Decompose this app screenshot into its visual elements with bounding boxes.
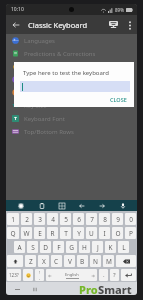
button[interactable]: N	[90, 255, 101, 267]
button[interactable]: Top/Bottom Rows	[6, 125, 137, 138]
staticText: Classic Keyboard	[28, 20, 104, 30]
button[interactable]: U	[86, 227, 97, 239]
button[interactable]: CLOSE	[103, 93, 134, 106]
button[interactable]: 6	[73, 213, 84, 225]
button[interactable]: O	[112, 227, 123, 239]
button[interactable]: 4	[47, 213, 58, 225]
button[interactable]: F	[53, 241, 64, 253]
staticText: T	[64, 229, 68, 238]
staticText: A	[17, 243, 22, 252]
staticText: C	[54, 257, 59, 266]
staticText: Sound & Vibration	[24, 89, 76, 97]
button[interactable]: Backspace	[116, 255, 136, 267]
button[interactable]: G	[66, 241, 77, 253]
staticText: 89%	[115, 7, 124, 13]
button[interactable]: 3	[34, 213, 45, 225]
button[interactable]: right	[96, 200, 107, 211]
staticText: 6	[77, 215, 81, 224]
staticText: Z	[29, 257, 33, 266]
button[interactable]: L	[118, 241, 129, 253]
button[interactable]: A	[14, 241, 25, 253]
staticText: 1	[11, 215, 15, 224]
button[interactable]: 9	[112, 213, 123, 225]
staticText: 0	[129, 215, 133, 224]
button[interactable]: left	[76, 200, 87, 211]
button[interactable]: Languages	[6, 34, 137, 47]
button[interactable]: 0	[125, 213, 136, 225]
staticText: S	[31, 243, 35, 252]
staticText: Key Size	[24, 102, 47, 110]
staticText: Top/Bottom Rows	[24, 128, 74, 136]
button[interactable]: More options	[123, 18, 137, 32]
button[interactable]: Space, English	[46, 269, 97, 281]
staticText: E	[38, 229, 42, 238]
staticText: Smart	[98, 282, 132, 295]
button[interactable]: Enter	[121, 269, 136, 281]
button[interactable]: Shift	[7, 255, 23, 267]
button[interactable]: K	[105, 241, 116, 253]
staticText: CLOSE	[110, 96, 127, 103]
button[interactable]: D	[40, 241, 51, 253]
button[interactable]: !	[35, 269, 44, 281]
button[interactable]: Emoji	[23, 269, 33, 281]
button[interactable]: Recent apps	[32, 286, 38, 292]
button[interactable]: 8	[99, 213, 110, 225]
staticText: ,	[39, 275, 41, 280]
staticText: Theme	[24, 76, 44, 84]
button[interactable]: Keyboard Font	[6, 112, 137, 125]
staticText: G	[69, 243, 74, 252]
staticText: V	[68, 257, 72, 266]
button[interactable]: P	[125, 227, 136, 239]
button[interactable]: I	[99, 227, 110, 239]
button[interactable]: gear	[15, 200, 26, 211]
staticText: 7	[90, 215, 94, 224]
staticText: Type here to test the keyboard	[23, 69, 109, 77]
button[interactable]: J	[92, 241, 103, 253]
button[interactable]: B	[77, 255, 88, 267]
staticText: D	[43, 243, 48, 252]
button[interactable]: 7	[86, 213, 97, 225]
button[interactable]: C	[51, 255, 62, 267]
button[interactable]: clip	[36, 200, 47, 211]
button[interactable]: 5	[60, 213, 71, 225]
button[interactable]: Predictions & Corrections	[6, 47, 137, 60]
button[interactable]: S	[27, 241, 38, 253]
staticText: U	[89, 229, 94, 238]
button[interactable]: grid	[56, 200, 67, 211]
button[interactable]: E	[34, 227, 45, 239]
button[interactable]: mic	[117, 200, 128, 211]
staticText: 9	[116, 215, 120, 224]
button[interactable]: Z	[25, 255, 36, 267]
button[interactable]: Sound & Vibration	[6, 86, 137, 99]
button[interactable]: W	[21, 227, 32, 239]
staticText: Languages	[24, 37, 55, 45]
button[interactable]: X	[38, 255, 49, 267]
staticText: H	[82, 243, 87, 252]
button[interactable]: R	[47, 227, 58, 239]
button[interactable]: T	[60, 227, 71, 239]
staticText: 5	[64, 215, 68, 224]
button[interactable]: Theme	[6, 73, 137, 86]
staticText: .	[103, 271, 105, 279]
staticText: W	[23, 229, 30, 238]
button[interactable]: Q	[7, 227, 19, 239]
button[interactable]: Back	[14, 286, 20, 292]
staticText: L	[122, 243, 126, 252]
button[interactable]: H	[79, 241, 90, 253]
button[interactable]: V	[64, 255, 75, 267]
staticText: I	[103, 229, 106, 238]
button[interactable]: 123?	[7, 269, 21, 281]
button[interactable]: 1	[7, 213, 19, 225]
button[interactable]: .	[99, 269, 108, 281]
button[interactable]: M	[103, 255, 114, 267]
button[interactable]: ?	[110, 269, 119, 281]
button[interactable]: 2	[21, 213, 32, 225]
staticText: O	[115, 229, 121, 238]
button[interactable]: Key Size	[6, 99, 137, 112]
button[interactable]: Keyboard preview	[104, 15, 123, 34]
button[interactable]: Gestures	[6, 60, 137, 73]
button[interactable]: Y	[73, 227, 84, 239]
button[interactable]	[20, 81, 130, 92]
button[interactable]: Back	[6, 15, 25, 34]
